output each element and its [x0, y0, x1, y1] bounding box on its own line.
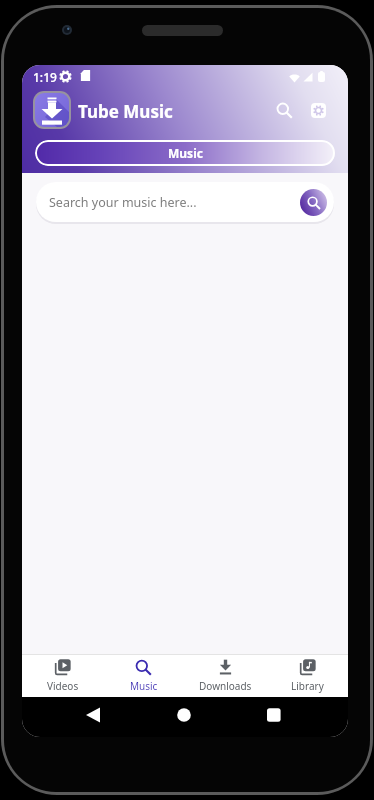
staticText: Tube Music	[78, 100, 173, 123]
button[interactable]: Videos	[22, 655, 103, 697]
button[interactable]	[300, 189, 327, 216]
staticText: 1:19	[33, 69, 57, 85]
button[interactable]: Music	[35, 140, 335, 166]
button[interactable]	[304, 96, 332, 124]
button[interactable]	[269, 95, 299, 125]
staticText: Videos	[47, 679, 79, 693]
staticText: Search your music here...	[49, 194, 197, 211]
button[interactable]: Library	[266, 655, 348, 697]
staticText: Downloads	[199, 679, 252, 693]
button[interactable]: Downloads	[184, 655, 266, 697]
button[interactable]: Music	[103, 655, 184, 697]
staticText: Music	[168, 145, 203, 161]
button[interactable]	[33, 91, 71, 129]
button[interactable]: Search your music here...	[36, 182, 334, 222]
staticText: Music	[130, 679, 158, 693]
staticText: Library	[291, 679, 324, 693]
